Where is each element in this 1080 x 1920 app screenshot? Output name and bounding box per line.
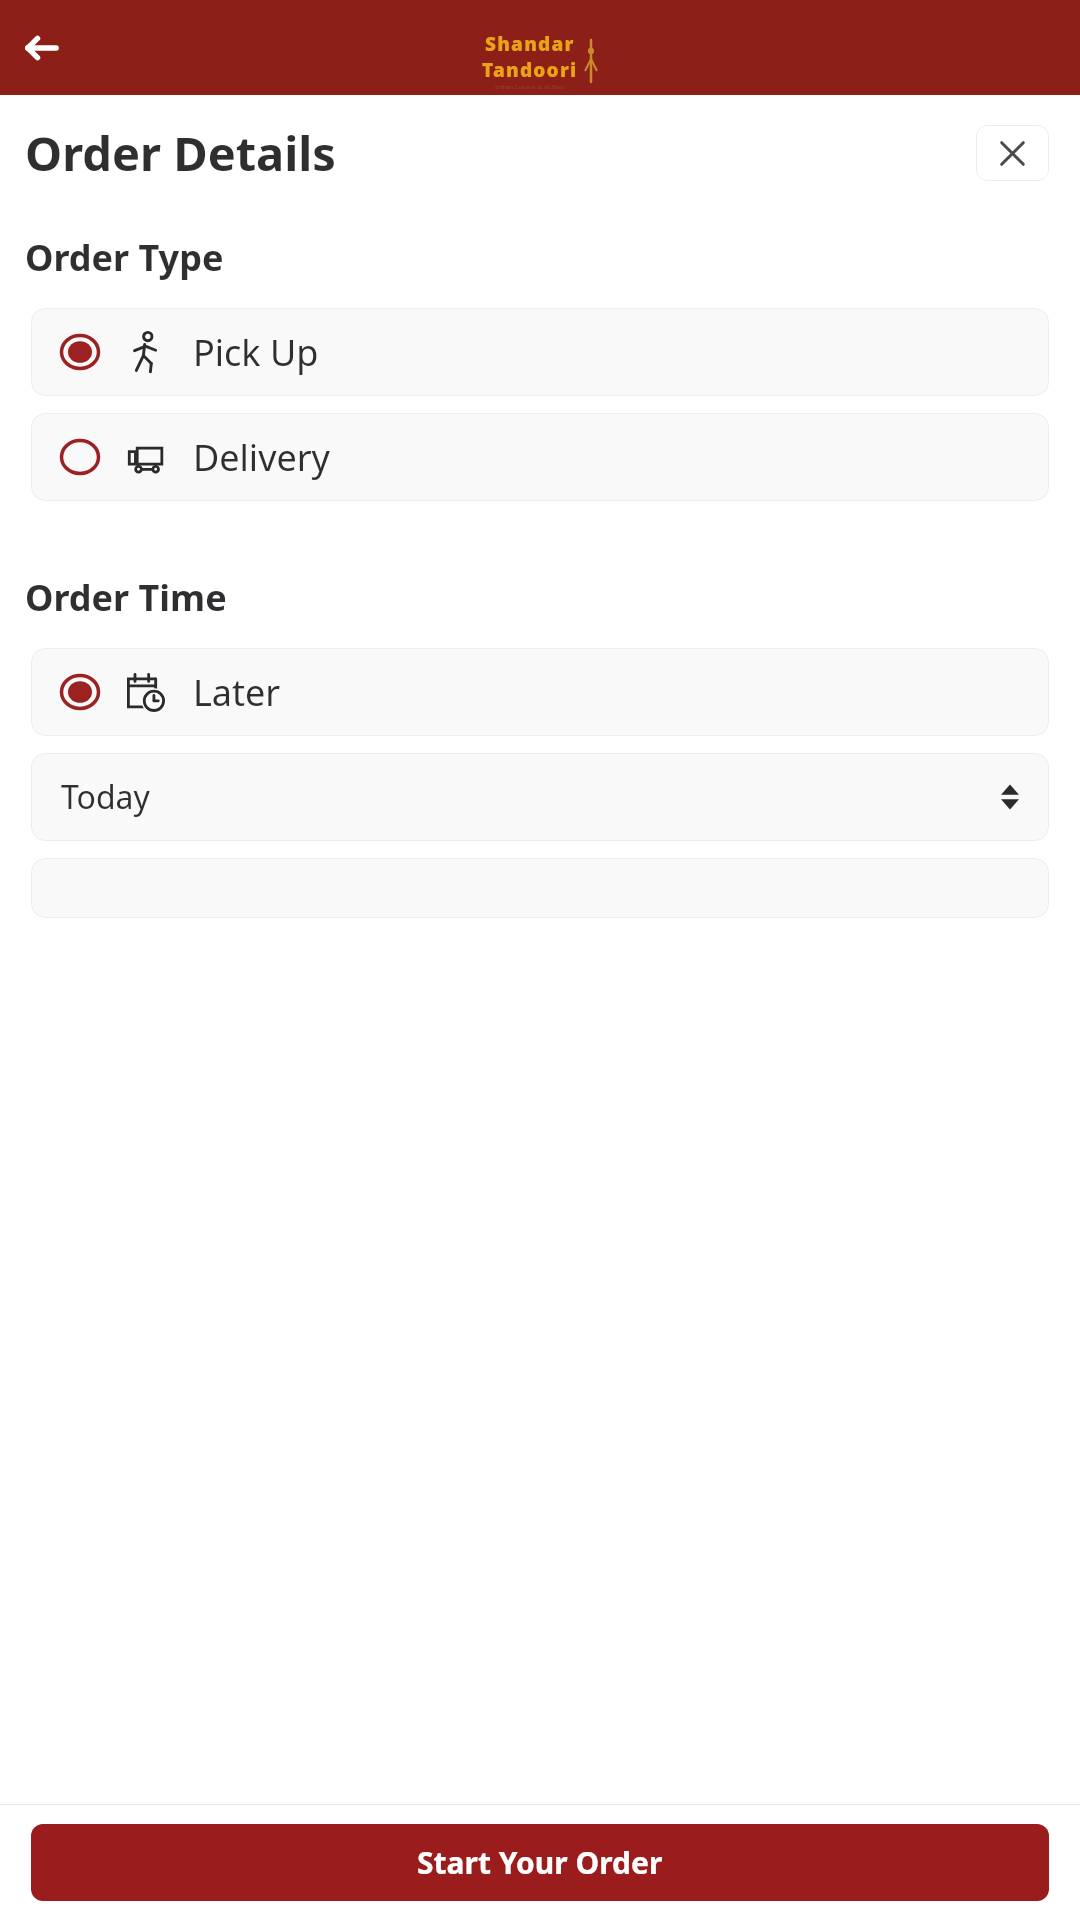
button[interactable]: Today (31, 753, 1049, 841)
staticText: Today (61, 775, 150, 819)
staticText: Order Details (25, 121, 336, 185)
staticText: Delivery (193, 433, 330, 482)
staticText: Shandar (485, 31, 575, 57)
staticText: Order Time (25, 573, 227, 622)
button[interactable]: Start Your Order (31, 1824, 1049, 1901)
button[interactable]: Close (976, 125, 1049, 181)
staticText: Later (193, 668, 281, 717)
staticText: Indian Cuisine at its Best (495, 83, 565, 91)
staticText: Pick Up (193, 328, 319, 377)
staticText: Order Type (25, 233, 224, 282)
button[interactable]: Later (31, 648, 1049, 736)
button[interactable]: Back (18, 24, 66, 72)
staticText: Start Your Order (417, 1842, 663, 1883)
button[interactable]: Pick Up (31, 308, 1049, 396)
staticText: Tandoori (482, 57, 578, 83)
button[interactable]: Delivery (31, 413, 1049, 501)
